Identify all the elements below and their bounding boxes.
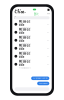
button[interactable]: Message title [12, 52, 52, 60]
staticText: Message title [19, 36, 31, 43]
staticText: Preview text here [19, 51, 31, 53]
staticText: 9:41 [46, 47, 49, 49]
staticText: Preview text here [19, 67, 31, 69]
staticText: 9:41 [15, 8, 22, 11]
staticText: Preview text here [19, 35, 31, 37]
staticText: Chats [14, 9, 25, 19]
staticText: 9:41 [46, 31, 49, 33]
staticText: Message title [19, 20, 31, 27]
staticText: Preview text here [19, 27, 31, 29]
staticText: Edit [33, 12, 38, 16]
staticText: 9:41 [46, 55, 49, 57]
staticText: Sure, that works for me [33, 77, 48, 79]
staticText: Message title [19, 44, 31, 51]
staticText: Preview text here [19, 43, 31, 45]
staticText: 9:41 [46, 23, 49, 25]
staticText: Message title [19, 52, 31, 59]
staticText: 9:41 [46, 63, 49, 65]
staticText: ▮▮ [47, 8, 49, 11]
staticText: Preview text here [19, 59, 31, 61]
staticText: See you then [39, 83, 48, 84]
button[interactable]: Message title [12, 60, 52, 68]
button[interactable]: Message title [12, 36, 52, 44]
staticText: Message title [19, 60, 31, 67]
staticText: Message title [19, 28, 31, 35]
button[interactable]: Message title [12, 28, 52, 36]
button[interactable]: Message title [12, 44, 52, 52]
staticText: • • [46, 12, 49, 16]
staticText: 9:41 [46, 39, 49, 41]
button[interactable]: Message title [12, 20, 52, 28]
